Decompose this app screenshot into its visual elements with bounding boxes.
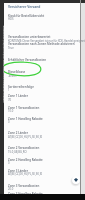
staticText: HDS [8,17,14,21]
staticText: AT,BE,CZ,DK,HU,PL,SE,SK,SI [8,172,43,176]
staticText: Zone 3 Handling Rabatte [8,192,43,196]
staticText: Dieselklasse [8,70,26,74]
staticText: Erhältlicher Versandkosten [8,58,47,62]
button[interactable]: Help [72,176,80,184]
staticText: 10.0 [8,109,14,113]
staticText: Fragen? Feedback? Wir helfen gerne weite… [0,98,3,102]
staticText: Kiosk für Bestellübersicht [8,14,45,18]
staticText: Zone 1 Versandkosten [8,106,40,110]
staticText: True [8,46,14,50]
staticText: 15.0,GB,BG,RO [8,150,27,154]
staticText: KONTUME: Diese Versandart ist nur für XD… [8,39,85,43]
staticText: Zone 1 Handling Rabatte [8,117,43,121]
staticText: Versandkosten nach Zonen Methode aktivie… [8,42,75,46]
staticText: Zone 1 Länder [8,94,29,98]
staticText: 0 [8,161,10,165]
staticText: Versicherer Versand [8,4,41,8]
staticText: Zone 2 Handling Rabatte [8,158,43,162]
staticText: 0 [8,120,10,124]
staticText: Zone 2 Länder [8,131,29,135]
staticText: AT,BE,CZ,DK,HU,PL,SE,SK,SI [8,135,43,139]
staticText: Versandkosten unterbewertet [8,35,51,39]
staticText: Zone 3 Versandkosten [8,184,40,188]
staticText: 1 [8,88,10,92]
staticText: -keine- [8,74,17,78]
staticText: 20.0 [8,187,14,191]
staticText: Zone 3 Länder [8,169,29,173]
staticText: 70 [8,98,12,102]
staticText: Zone 2 Versandkosten [8,146,40,150]
staticText: Sortierreihenfolge [8,85,34,89]
